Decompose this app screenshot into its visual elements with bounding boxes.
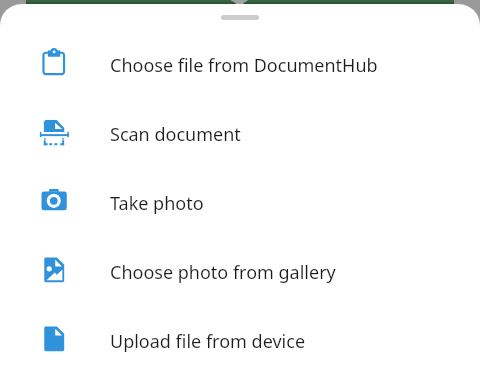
button[interactable]: Take photo [0, 166, 480, 235]
staticText: Scan document [110, 122, 241, 147]
staticText: Upload file from device [110, 329, 306, 354]
staticText: Choose file from DocumentHub [110, 53, 378, 78]
button[interactable]: Choose file from DocumentHub [0, 28, 480, 97]
button[interactable]: Upload file from device [0, 304, 480, 373]
staticText: Choose photo from gallery [110, 260, 336, 285]
button[interactable]: Scan document [0, 97, 480, 166]
button[interactable]: Choose photo from gallery [0, 235, 480, 304]
staticText: Take photo [110, 191, 204, 216]
